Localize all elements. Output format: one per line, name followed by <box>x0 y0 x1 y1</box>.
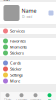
button[interactable]: Contacts <box>14 92 28 100</box>
staticText: ID: wxid <box>21 15 32 19</box>
staticText: Discover <box>30 98 41 100</box>
button[interactable]: Chats <box>0 92 14 100</box>
staticText: Cards <box>10 60 21 66</box>
staticText: Stickers <box>10 50 24 56</box>
staticText: Contacts <box>16 98 27 100</box>
staticText: Moments <box>10 44 27 50</box>
staticText: Me <box>47 98 51 100</box>
staticText: 9:41 <box>3 0 10 2</box>
staticText: Favorites <box>10 38 26 44</box>
staticText: Chats <box>4 98 11 100</box>
button[interactable]: Me <box>42 92 56 100</box>
staticText: More <box>10 78 20 84</box>
staticText: Name <box>21 7 36 14</box>
staticText: Sticker <box>10 66 22 72</box>
button[interactable]: Discover <box>28 92 42 100</box>
staticText: Services <box>10 28 25 34</box>
staticText: Settings <box>10 72 23 78</box>
